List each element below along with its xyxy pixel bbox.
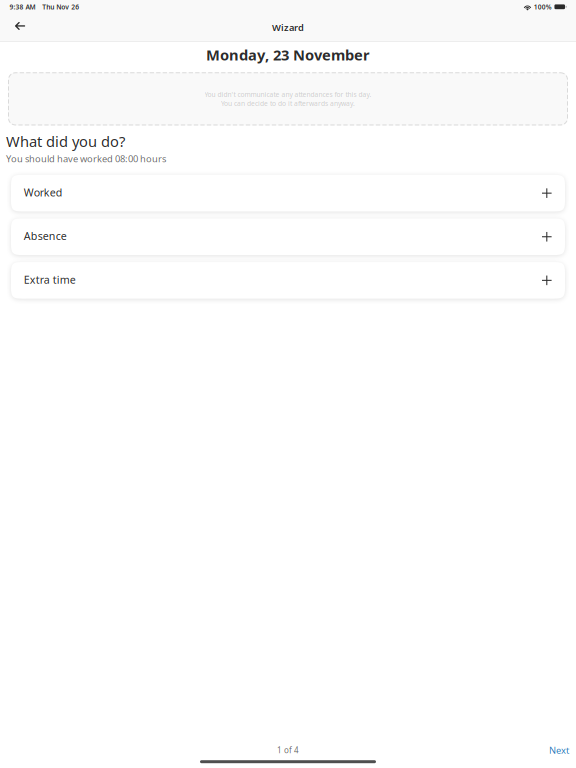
staticText: Wizard: [272, 21, 304, 34]
staticText: 1 of 4: [277, 745, 299, 755]
staticText: Extra time: [24, 272, 76, 287]
button[interactable]: Extra time: [11, 262, 565, 299]
button[interactable]: Absence: [11, 218, 565, 255]
button[interactable]: Next: [542, 740, 576, 760]
staticText: You didn't communicate any attendances f…: [204, 90, 371, 99]
staticText: You should have worked 08:00 hours: [6, 153, 166, 165]
button[interactable]: Back: [5, 14, 35, 41]
staticText: 100%: [534, 2, 552, 11]
staticText: What did you do?: [6, 132, 125, 151]
staticText: Worked: [24, 185, 63, 199]
staticText: Absence: [24, 229, 67, 243]
staticText: Next: [549, 744, 569, 756]
staticText: Thu Nov 26: [42, 2, 79, 11]
button[interactable]: Worked: [11, 175, 565, 211]
staticText: You can decide to do it afterwards anywa…: [221, 99, 355, 108]
staticText: 9:38 AM: [9, 2, 35, 11]
staticText: Monday, 23 November: [206, 45, 370, 64]
